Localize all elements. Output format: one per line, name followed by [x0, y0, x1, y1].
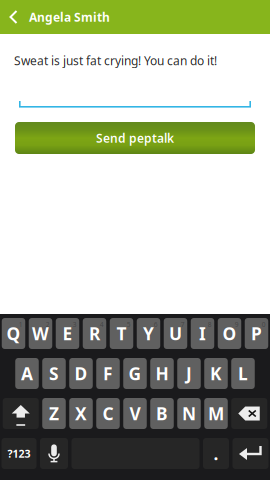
button[interactable]: X: [69, 398, 93, 429]
button[interactable]: ?123: [1, 438, 36, 469]
staticText: 6: [154, 320, 158, 329]
button[interactable]: I: [191, 318, 214, 349]
staticText: Y: [143, 322, 154, 345]
staticText: H: [155, 362, 168, 385]
button[interactable]: B: [150, 398, 174, 429]
button[interactable]: E: [56, 318, 79, 349]
staticText: V: [129, 402, 140, 425]
button[interactable]: .: [203, 438, 229, 469]
button[interactable]: A: [15, 358, 39, 389]
staticText: 2: [46, 320, 50, 329]
button[interactable]: L: [231, 358, 255, 389]
staticText: 9: [235, 320, 239, 329]
staticText: J: [186, 362, 192, 385]
staticText: O: [222, 322, 236, 345]
staticText: 0: [262, 320, 266, 329]
button[interactable]: K: [204, 358, 228, 389]
staticText: 1: [19, 320, 23, 329]
staticText: A: [21, 362, 33, 385]
button[interactable]: O: [218, 318, 241, 349]
staticText: Angela Smith: [29, 9, 110, 25]
button[interactable]: Y: [137, 318, 160, 349]
staticText: U: [169, 322, 182, 345]
button[interactable]: Send peptalk: [15, 122, 255, 154]
button[interactable]: Backspace: [231, 398, 267, 429]
button[interactable]: C: [96, 398, 120, 429]
staticText: E: [62, 322, 72, 345]
button[interactable]: G: [123, 358, 147, 389]
button[interactable]: Z: [42, 398, 66, 429]
staticText: L: [238, 362, 248, 385]
staticText: T: [116, 322, 126, 345]
button[interactable]: T: [110, 318, 133, 349]
staticText: M: [208, 402, 224, 425]
staticText: Q: [6, 322, 20, 345]
staticText: I: [199, 322, 206, 345]
button[interactable]: Voice input: [40, 438, 68, 469]
button[interactable]: W: [29, 318, 52, 349]
staticText: P: [251, 322, 262, 345]
button[interactable]: Q: [2, 318, 25, 349]
staticText: C: [102, 402, 113, 425]
button[interactable]: Shift: [3, 398, 39, 429]
staticText: Z: [49, 402, 59, 425]
button[interactable]: Back — Angela Smith: [0, 0, 270, 34]
staticText: .: [213, 442, 218, 465]
button[interactable]: P: [245, 318, 268, 349]
button[interactable]: H: [150, 358, 174, 389]
staticText: K: [210, 362, 222, 385]
button[interactable]: Return: [232, 438, 268, 469]
staticText: 3: [73, 320, 77, 329]
button[interactable]: F: [96, 358, 120, 389]
button[interactable]: V: [123, 398, 147, 429]
staticText: Send peptalk: [96, 130, 174, 146]
staticText: 5: [127, 320, 131, 329]
staticText: ?123: [7, 446, 30, 461]
staticText: X: [75, 402, 87, 425]
staticText: 8: [208, 320, 212, 329]
button[interactable]: S: [42, 358, 66, 389]
button[interactable]: J: [177, 358, 201, 389]
staticText: G: [128, 362, 141, 385]
staticText: R: [89, 322, 100, 345]
staticText: D: [74, 362, 87, 385]
staticText: W: [32, 322, 49, 345]
staticText: 4: [100, 320, 104, 329]
staticText: N: [182, 402, 196, 425]
button[interactable]: N: [177, 398, 201, 429]
staticText: Sweat is just fat crying! You can do it!: [14, 52, 217, 68]
button[interactable]: D: [69, 358, 93, 389]
staticText: S: [49, 362, 59, 385]
button[interactable]: R: [83, 318, 106, 349]
staticText: B: [156, 402, 168, 425]
button[interactable]: M: [204, 398, 228, 429]
staticText: 7: [181, 320, 185, 329]
button[interactable]: U: [164, 318, 187, 349]
staticText: F: [103, 362, 113, 385]
